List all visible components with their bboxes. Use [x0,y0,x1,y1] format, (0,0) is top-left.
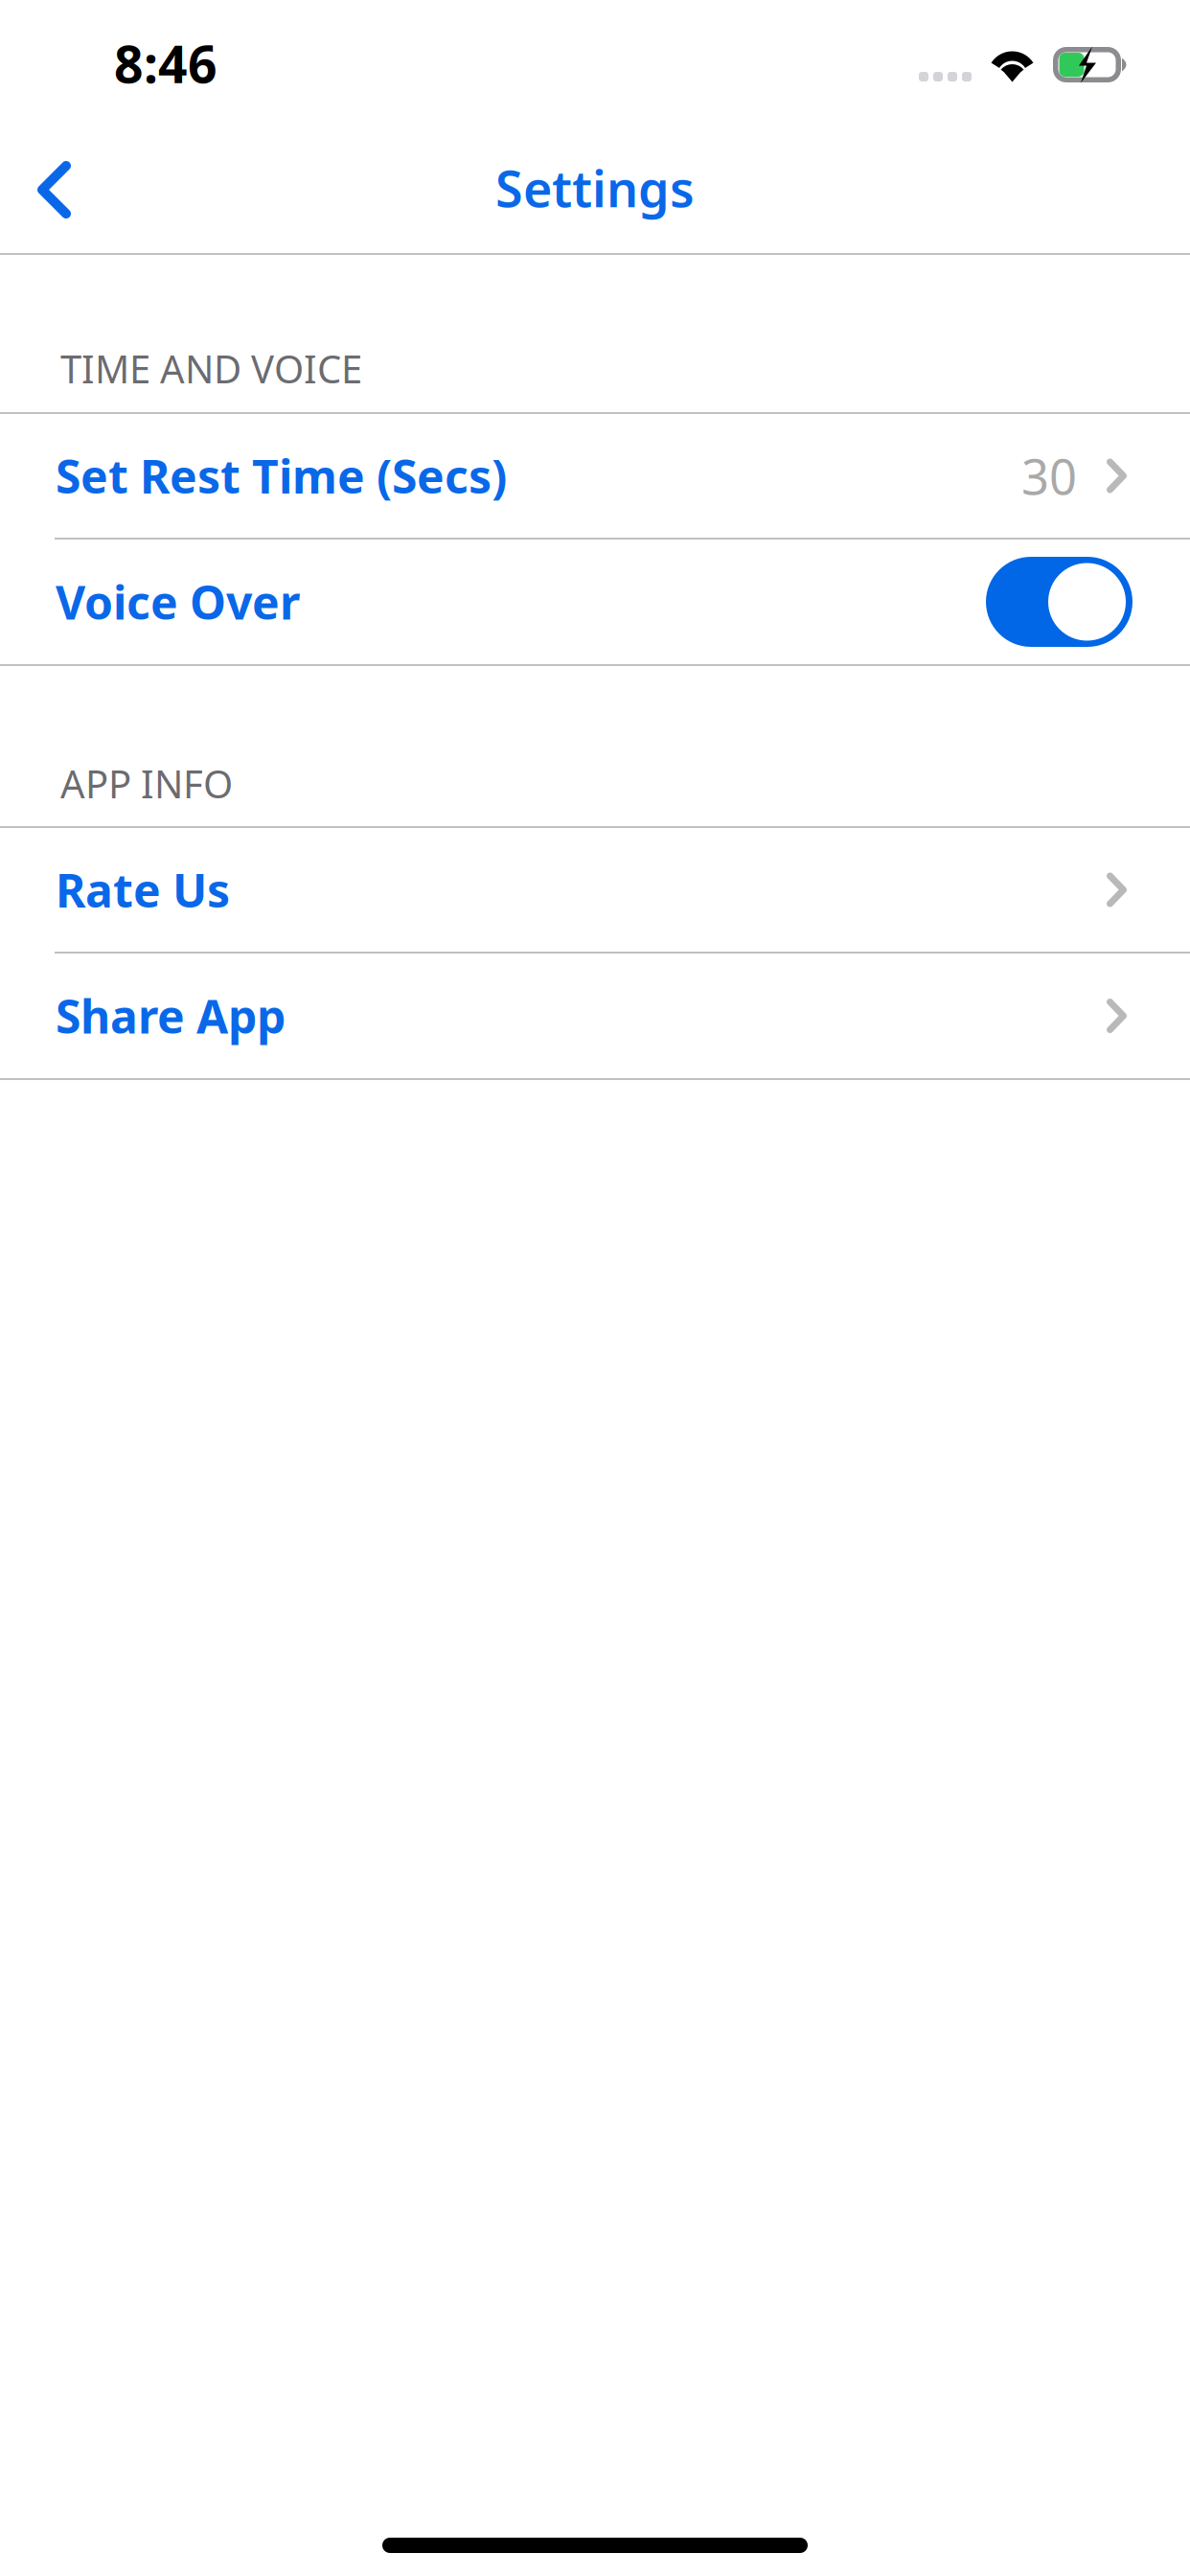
button[interactable]: Voice Over [986,557,1133,647]
button[interactable]: Share App [0,954,1190,1078]
staticText: 8:46 [114,29,217,97]
staticText: Settings [495,155,695,221]
button[interactable]: Back [0,126,144,253]
staticText: Voice Over [56,571,300,632]
staticText: Rate Us [56,859,230,920]
staticText: 30 [1021,444,1077,508]
staticText: APP INFO [60,758,233,809]
staticText: TIME AND VOICE [60,343,362,394]
button[interactable]: Set Rest Time (Secs) [0,414,1190,538]
staticText: Share App [56,985,286,1046]
staticText: Set Rest Time (Secs) [56,445,507,506]
button[interactable]: Rate Us [0,828,1190,952]
